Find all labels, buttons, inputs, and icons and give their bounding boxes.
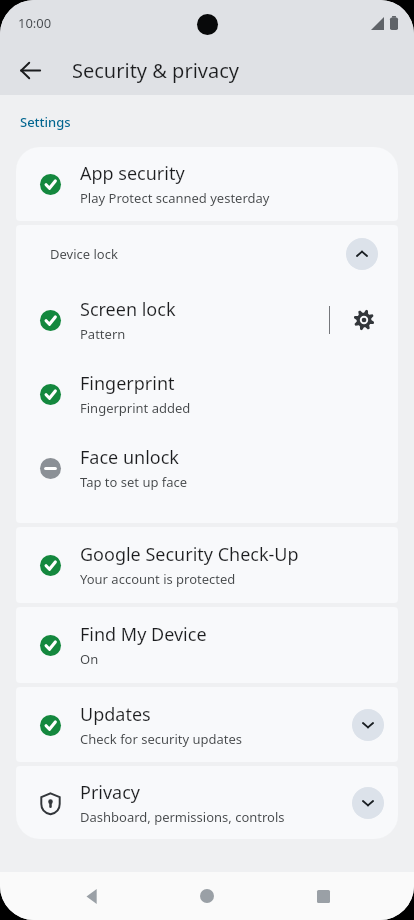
button[interactable]: Privacy <box>16 766 398 839</box>
button[interactable]: Fingerprint <box>16 357 398 431</box>
staticText: Face unlock <box>80 445 179 470</box>
staticText: Security & privacy <box>72 57 239 84</box>
staticText: 10:00 <box>18 14 52 32</box>
staticText: Fingerprint added <box>80 399 191 417</box>
staticText: Settings <box>20 113 71 131</box>
staticText: Pattern <box>80 325 126 343</box>
button[interactable]: Back <box>8 48 52 92</box>
staticText: Check for security updates <box>80 730 243 748</box>
staticText: Play Protect scanned yesterday <box>80 189 270 207</box>
staticText: Device lock <box>50 245 346 263</box>
button[interactable]: Screen lock <box>16 283 398 357</box>
button[interactable]: App security <box>16 147 398 221</box>
button[interactable]: Find My Device <box>16 607 398 683</box>
staticText: Updates <box>80 702 151 727</box>
staticText: Screen lock <box>80 297 176 322</box>
staticText: Google Security Check-Up <box>80 542 299 567</box>
staticText: Privacy <box>80 780 141 805</box>
button[interactable]: Recent apps <box>299 872 347 920</box>
button[interactable]: Google Security Check-Up <box>16 527 398 603</box>
button[interactable]: Updates <box>16 687 398 762</box>
staticText: Tap to set up face <box>80 473 188 491</box>
button[interactable]: Home <box>183 872 231 920</box>
button[interactable]: Expand Updates <box>352 709 384 741</box>
staticText: Dashboard, permissions, controls <box>80 808 285 826</box>
staticText: On <box>80 650 99 668</box>
button[interactable]: Device lock <box>16 225 398 283</box>
staticText: App security <box>80 161 185 186</box>
button[interactable]: Collapse Device lock <box>346 238 378 270</box>
staticText: Your account is protected <box>80 570 236 588</box>
button[interactable]: Face unlock <box>16 431 398 505</box>
staticText: Find My Device <box>80 622 207 647</box>
button[interactable]: Screen lock settings <box>344 300 384 340</box>
button[interactable]: Expand Privacy <box>352 787 384 819</box>
button[interactable]: Back <box>68 872 116 920</box>
staticText: Fingerprint <box>80 371 175 396</box>
